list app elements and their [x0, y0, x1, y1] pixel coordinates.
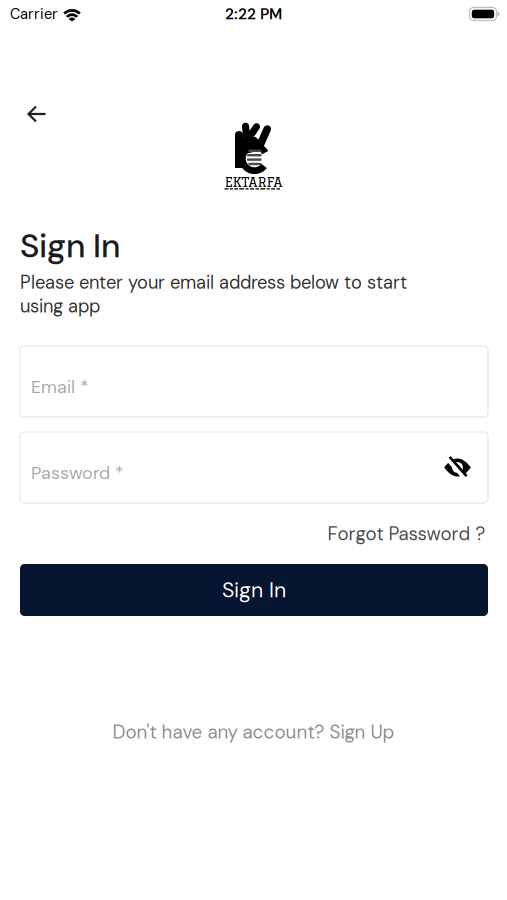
- button[interactable]: Sign In: [20, 564, 488, 616]
- staticText: EKTARFA: [224, 174, 282, 190]
- staticText: Don't have any account?: [112, 720, 329, 744]
- staticText: Sign Up: [329, 720, 394, 744]
- staticText: Forgot Password ?: [327, 522, 485, 546]
- staticText: Sign In: [222, 576, 286, 604]
- button[interactable]: Show password: [444, 456, 471, 478]
- staticText: Email *: [31, 375, 89, 399]
- button[interactable]: Back: [15, 94, 59, 134]
- staticText: Sign In: [20, 224, 120, 268]
- staticText: Carrier: [10, 4, 58, 24]
- staticText: Please enter your email address below to…: [20, 271, 407, 318]
- staticText: 2:22 PM: [225, 4, 282, 24]
- button[interactable]: Forgot Password ?: [327, 522, 485, 546]
- staticText: Password *: [31, 461, 124, 485]
- button[interactable]: Don't have any account?: [112, 720, 394, 744]
